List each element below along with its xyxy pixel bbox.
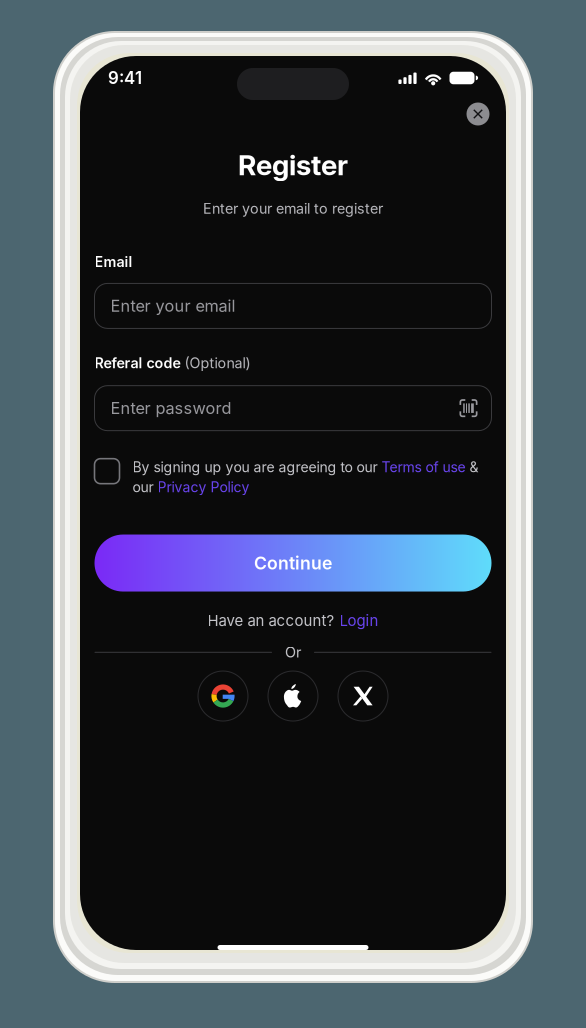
staticText: Register [238, 148, 348, 182]
staticText: Continue [254, 552, 332, 574]
button[interactable]: Login [339, 611, 378, 630]
button[interactable]: Enter password [94, 386, 491, 431]
staticText: Enter password [110, 398, 231, 418]
button[interactable]: Continue with X [338, 671, 388, 721]
staticText: Enter your email to register [203, 200, 383, 217]
button[interactable]: Continue with Apple [268, 671, 318, 721]
staticText: Privacy Policy [157, 479, 249, 495]
staticText: Email [94, 253, 132, 270]
button[interactable]: Continue with Google [198, 671, 248, 721]
staticText: & [465, 459, 478, 476]
staticText: Login [339, 611, 378, 630]
staticText: Terms of use [381, 459, 465, 476]
staticText: By signing up you are agreeing to our [132, 459, 381, 476]
staticText: Enter your email [110, 296, 235, 316]
button[interactable]: Agree to terms of use and privacy policy [94, 459, 119, 484]
staticText: Have an account? [207, 611, 334, 630]
staticText: our [132, 479, 157, 495]
staticText: (Optional) [184, 354, 250, 372]
staticText: Or [285, 644, 301, 661]
button[interactable]: Enter your email [94, 283, 491, 328]
button[interactable]: Continue [94, 534, 491, 591]
button[interactable]: Close [461, 97, 495, 131]
staticText: 9:41 [108, 68, 142, 88]
staticText: Referal code [94, 354, 180, 372]
